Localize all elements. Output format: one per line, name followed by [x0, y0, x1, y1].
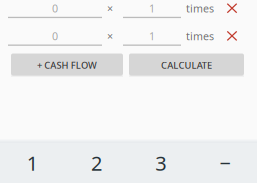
- staticText: ×: [107, 29, 113, 43]
- button[interactable]: 3: [128, 143, 193, 183]
- staticText: ×: [107, 1, 113, 15]
- button[interactable]: 1: [0, 143, 64, 183]
- textField[interactable]: 0: [8, 2, 102, 22]
- textField[interactable]: 1: [123, 30, 181, 50]
- staticText: 0: [52, 1, 58, 15]
- button[interactable]: CALCULATE: [129, 53, 244, 75]
- staticText: 1: [149, 1, 155, 15]
- button[interactable]: Remove cash flow: [220, 0, 244, 18]
- button[interactable]: Remove cash flow: [220, 26, 244, 46]
- staticText: 1: [27, 150, 38, 176]
- textField[interactable]: 0: [8, 30, 102, 50]
- button[interactable]: + CASH FLOW: [11, 53, 123, 75]
- staticText: + CASH FLOW: [37, 59, 97, 71]
- staticText: CALCULATE: [161, 59, 212, 71]
- staticText: 2: [91, 150, 102, 176]
- staticText: 1: [149, 29, 155, 43]
- staticText: 3: [155, 150, 166, 176]
- button[interactable]: Minus: [193, 143, 257, 183]
- staticText: 0: [52, 29, 58, 43]
- staticText: −: [219, 150, 230, 176]
- staticText: times: [186, 1, 214, 15]
- button[interactable]: 2: [64, 143, 128, 183]
- textField[interactable]: 1: [123, 2, 181, 22]
- staticText: times: [186, 29, 214, 43]
